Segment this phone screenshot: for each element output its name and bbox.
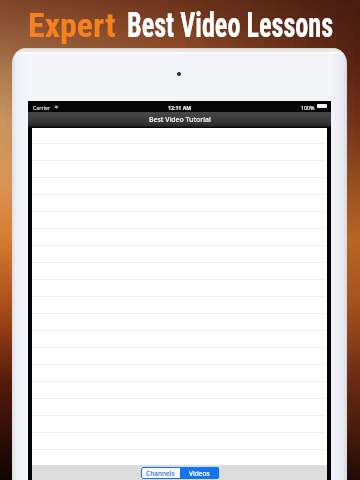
- staticText: 12:11 AM: [168, 104, 192, 111]
- staticText: Best Video Tutorial: [149, 115, 211, 124]
- staticText: Carrier: [33, 104, 51, 111]
- staticText: Expert: [28, 7, 116, 45]
- button[interactable]: Videos: [180, 467, 219, 479]
- button[interactable]: Channels: [141, 467, 180, 479]
- staticText: 100%: [301, 104, 315, 111]
- staticText: Best Video Lessons: [127, 5, 333, 46]
- staticText: Channels: [146, 469, 175, 478]
- staticText: Videos: [189, 469, 210, 478]
